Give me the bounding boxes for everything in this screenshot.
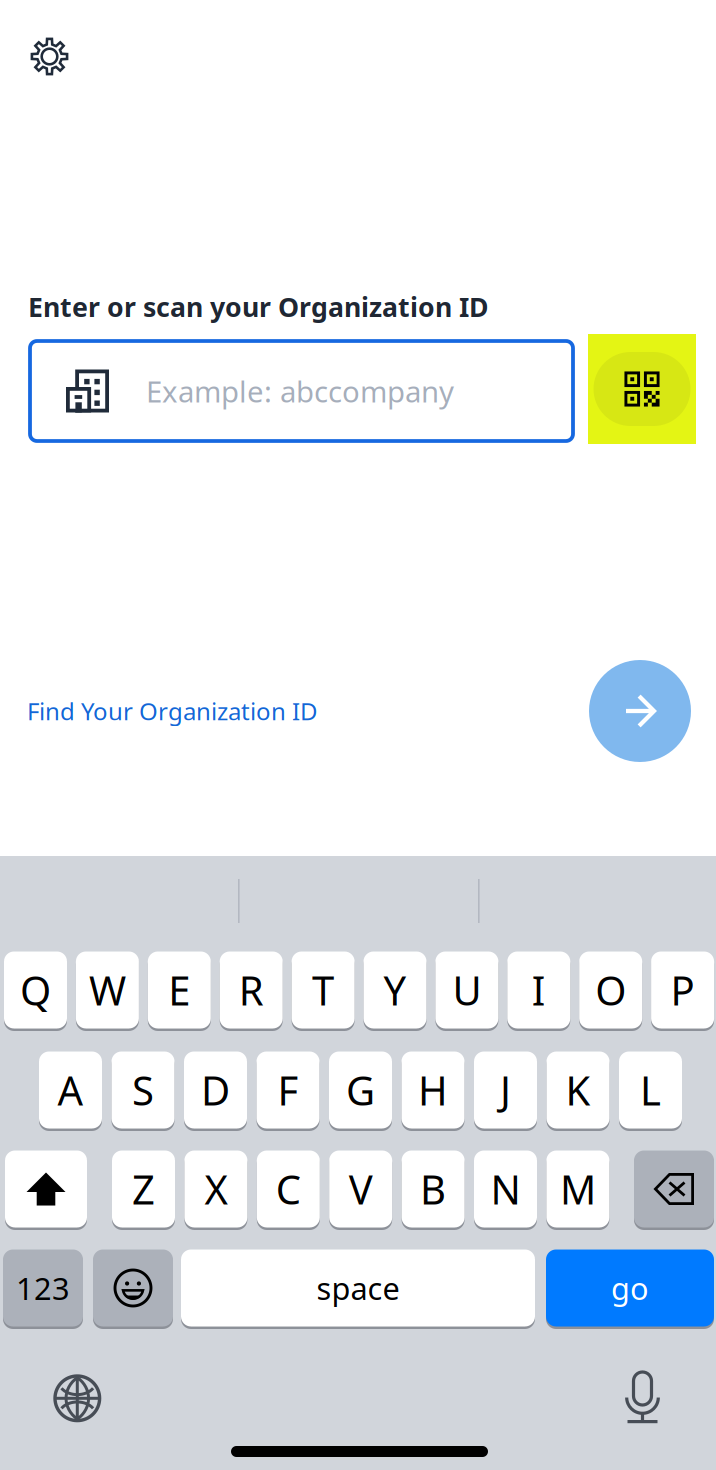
button[interactable]: B — [402, 1149, 465, 1229]
button[interactable]: P — [651, 950, 714, 1030]
staticText: G — [346, 1063, 375, 1116]
button[interactable]: A — [39, 1050, 102, 1130]
staticText: space — [316, 1268, 399, 1308]
button[interactable]: 123 — [3, 1248, 83, 1328]
button[interactable]: F — [256, 1050, 319, 1130]
staticText: C — [276, 1162, 301, 1215]
staticText: L — [640, 1063, 661, 1116]
staticText: A — [57, 1063, 83, 1116]
button[interactable]: Q — [4, 950, 67, 1030]
button[interactable]: I — [507, 950, 570, 1030]
button[interactable]: E — [148, 950, 211, 1030]
button[interactable] — [93, 1248, 173, 1328]
staticText: J — [500, 1063, 511, 1116]
button[interactable]: S — [111, 1050, 174, 1130]
staticText: V — [349, 1162, 373, 1215]
button[interactable]: J — [474, 1050, 537, 1130]
staticText: H — [418, 1063, 448, 1116]
staticText: K — [565, 1063, 590, 1116]
staticText: S — [132, 1063, 154, 1116]
button[interactable]: X — [184, 1149, 247, 1229]
button[interactable]: Y — [363, 950, 426, 1030]
button[interactable]: Next keyboard — [41, 1362, 114, 1435]
staticText: Example: abccompany — [146, 371, 454, 410]
button[interactable] — [634, 1149, 714, 1229]
button[interactable]: R — [220, 950, 283, 1030]
button[interactable]: Find Your Organization ID — [25, 683, 320, 739]
staticText: U — [452, 963, 481, 1016]
button[interactable]: W — [76, 950, 139, 1030]
button[interactable]: H — [401, 1050, 464, 1130]
staticText: D — [201, 1063, 230, 1116]
staticText: Enter or scan your Organization ID — [28, 289, 489, 324]
staticText: Find Your Organization ID — [27, 695, 318, 727]
button[interactable]: M — [546, 1149, 609, 1229]
staticText: W — [89, 963, 126, 1016]
staticText: 123 — [16, 1268, 70, 1308]
staticText: Q — [20, 963, 51, 1016]
button[interactable]: Continue — [589, 660, 691, 762]
button[interactable]: C — [257, 1149, 320, 1229]
button[interactable]: space — [181, 1248, 535, 1328]
staticText: P — [671, 963, 695, 1016]
button[interactable]: go — [546, 1248, 714, 1328]
button[interactable]: T — [292, 950, 355, 1030]
button[interactable]: D — [184, 1050, 247, 1130]
staticText: O — [595, 963, 626, 1016]
button[interactable]: K — [546, 1050, 609, 1130]
staticText: M — [560, 1162, 596, 1215]
staticText: E — [168, 963, 190, 1016]
button[interactable]: O — [579, 950, 642, 1030]
staticText: X — [204, 1162, 227, 1215]
button[interactable]: U — [435, 950, 498, 1030]
button[interactable] — [5, 1149, 87, 1229]
staticText: go — [611, 1268, 649, 1308]
button[interactable]: Scan QR code — [588, 334, 696, 444]
button[interactable]: Settings — [16, 23, 83, 90]
staticText: F — [277, 1063, 298, 1116]
staticText: B — [420, 1162, 446, 1215]
staticText: R — [239, 963, 264, 1016]
staticText: Y — [383, 963, 406, 1016]
button[interactable]: G — [329, 1050, 392, 1130]
staticText: T — [312, 963, 334, 1016]
button[interactable]: N — [474, 1149, 537, 1229]
button[interactable]: V — [329, 1149, 392, 1229]
button[interactable]: L — [619, 1050, 682, 1130]
button[interactable]: Z — [112, 1149, 175, 1229]
staticText: Z — [132, 1162, 155, 1215]
staticText: N — [490, 1162, 520, 1215]
staticText: I — [532, 963, 546, 1016]
button[interactable]: Dictate — [611, 1358, 674, 1437]
